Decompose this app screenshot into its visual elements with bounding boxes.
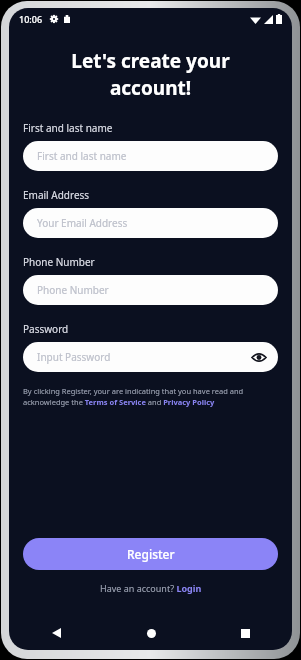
staticText: First and last name: [37, 149, 268, 163]
button[interactable]: First and last name: [23, 141, 278, 171]
staticText: Phone Number: [37, 283, 268, 297]
staticText: Password: [23, 322, 69, 336]
button[interactable]: Show password: [250, 348, 268, 366]
button[interactable]: By clicking Register, your are indicatin…: [23, 386, 278, 407]
staticText: 10:06: [19, 13, 43, 25]
staticText: Register: [127, 546, 175, 562]
button[interactable]: Recent apps: [198, 616, 292, 650]
staticText: Phone Number: [23, 255, 95, 269]
staticText: Have an account? Login: [100, 582, 202, 594]
button[interactable]: Back: [9, 616, 104, 650]
button[interactable]: Have an account? Login: [100, 582, 202, 594]
button[interactable]: Input Password: [23, 342, 278, 372]
button[interactable]: Your Email Address: [23, 208, 278, 238]
button[interactable]: Phone Number: [23, 275, 278, 305]
button[interactable]: Home: [104, 616, 198, 650]
staticText: Email Address: [23, 188, 90, 202]
staticText: Let's create your account!: [33, 48, 268, 101]
button[interactable]: Register: [23, 538, 278, 570]
staticText: First and last name: [23, 121, 113, 135]
staticText: Your Email Address: [37, 216, 268, 230]
staticText: Input Password: [37, 350, 250, 364]
